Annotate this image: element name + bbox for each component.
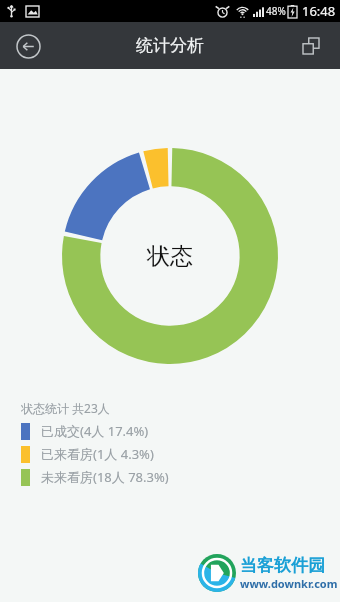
button[interactable]: 已来看房(1人 4.3%) — [21, 445, 154, 463]
staticText: 统计分析 — [136, 35, 204, 56]
staticText: www.downkr.com — [240, 576, 338, 591]
button[interactable]: 已成交(4人 17.4%) — [21, 422, 149, 440]
button[interactable]: Back — [8, 26, 48, 66]
staticText: 已来看房(1人 4.3%) — [41, 445, 154, 463]
button[interactable]: Switch view — [291, 26, 331, 66]
staticText: 状态 — [147, 242, 193, 271]
staticText: 16:48 — [302, 2, 336, 20]
button[interactable]: 未来看房(18人 78.3%) — [21, 468, 169, 486]
staticText: 未来看房(18人 78.3%) — [41, 468, 169, 486]
staticText: 48% — [266, 4, 286, 18]
staticText: 已成交(4人 17.4%) — [41, 422, 149, 440]
staticText: 当客软件园 — [240, 555, 325, 576]
staticText: 状态统计 共23人 — [21, 400, 110, 416]
